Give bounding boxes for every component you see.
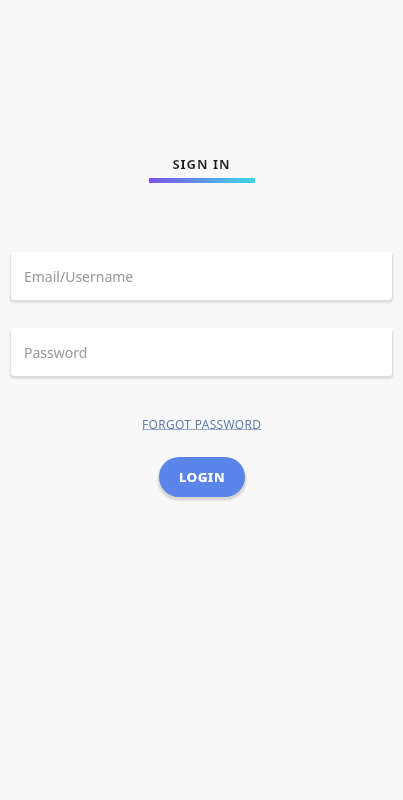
- staticText: SIGN IN: [172, 155, 231, 173]
- button[interactable]: Password: [11, 328, 392, 376]
- button[interactable]: LOGIN: [159, 457, 245, 497]
- staticText: Password: [24, 343, 88, 362]
- staticText: Email/Username: [24, 267, 134, 286]
- button[interactable]: FORGOT PASSWORD: [136, 413, 268, 435]
- button[interactable]: Email/Username: [11, 252, 392, 300]
- staticText: LOGIN: [179, 468, 226, 486]
- staticText: FORGOT PASSWORD: [142, 416, 262, 432]
